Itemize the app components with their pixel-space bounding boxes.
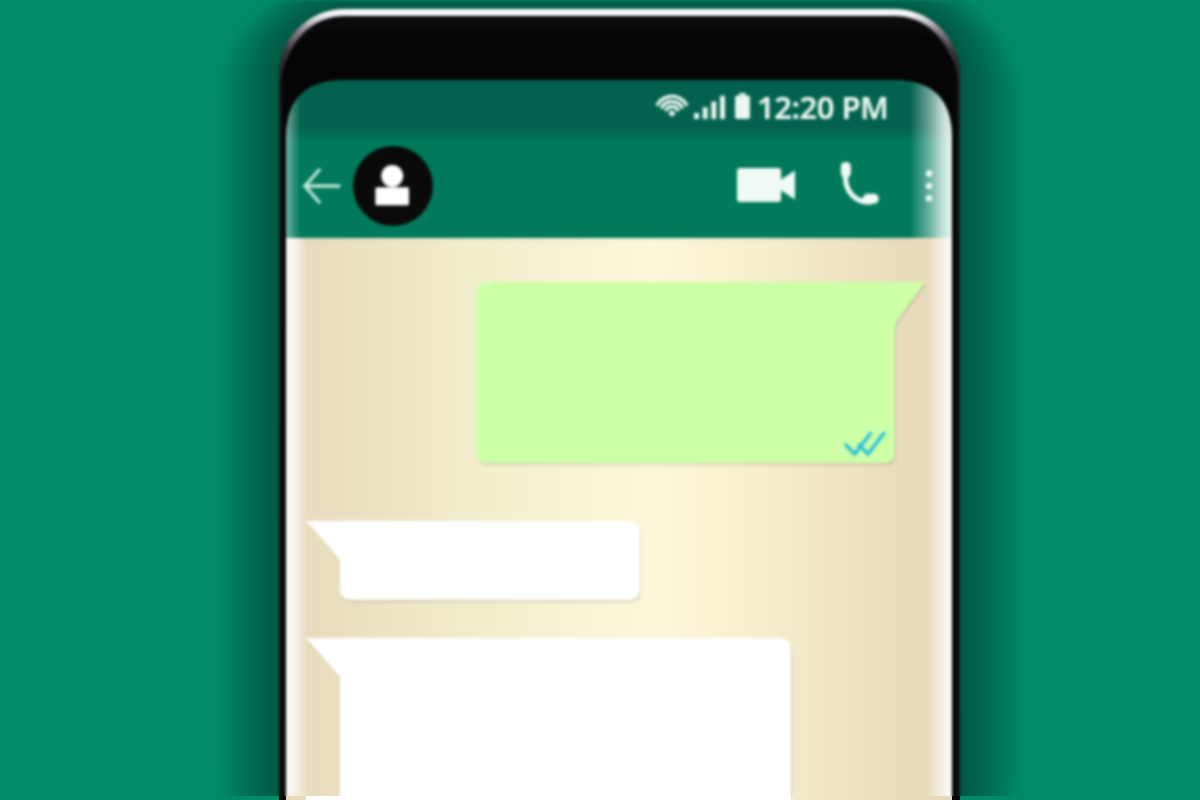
button[interactable]: Video call — [722, 152, 798, 220]
button[interactable]: Back — [295, 152, 349, 220]
staticText: 12:20 PM — [757, 86, 889, 128]
button[interactable]: Received message — [306, 521, 640, 600]
button[interactable]: Received message — [306, 638, 791, 800]
button[interactable]: Voice call — [820, 152, 892, 220]
button[interactable]: Sent message — [476, 282, 925, 464]
button[interactable]: Contact profile photo — [353, 146, 433, 226]
button[interactable]: More options — [906, 152, 952, 220]
